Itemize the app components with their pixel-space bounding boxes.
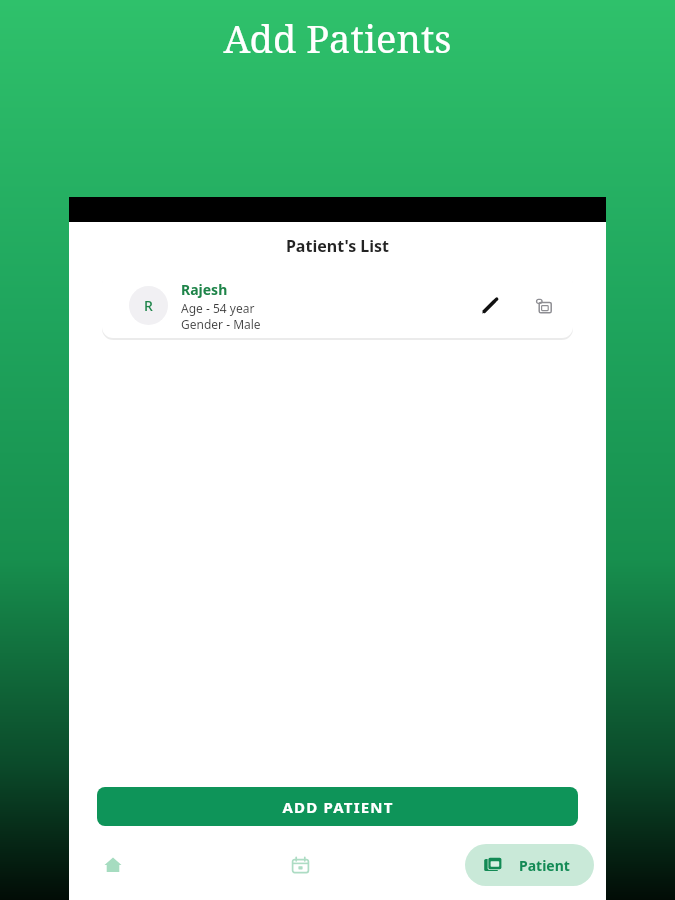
button[interactable]: Patient	[465, 844, 594, 886]
button[interactable]: Calendar	[278, 843, 322, 887]
staticText: Add Patients	[0, 12, 675, 64]
staticText: Age - 54 year	[181, 300, 255, 316]
button[interactable]: Home	[91, 843, 135, 887]
button[interactable]: ADD PATIENT	[97, 787, 578, 826]
staticText: Patient's List	[69, 235, 606, 257]
staticText: ADD PATIENT	[282, 797, 394, 817]
staticText: R	[144, 296, 153, 315]
staticText: Gender - Male	[181, 316, 261, 332]
button[interactable]: Edit patient	[475, 291, 505, 321]
button[interactable]: R	[102, 273, 573, 338]
button[interactable]: Patient notes	[529, 291, 559, 321]
staticText: Patient	[519, 856, 570, 875]
staticText: Rajesh	[181, 280, 228, 299]
